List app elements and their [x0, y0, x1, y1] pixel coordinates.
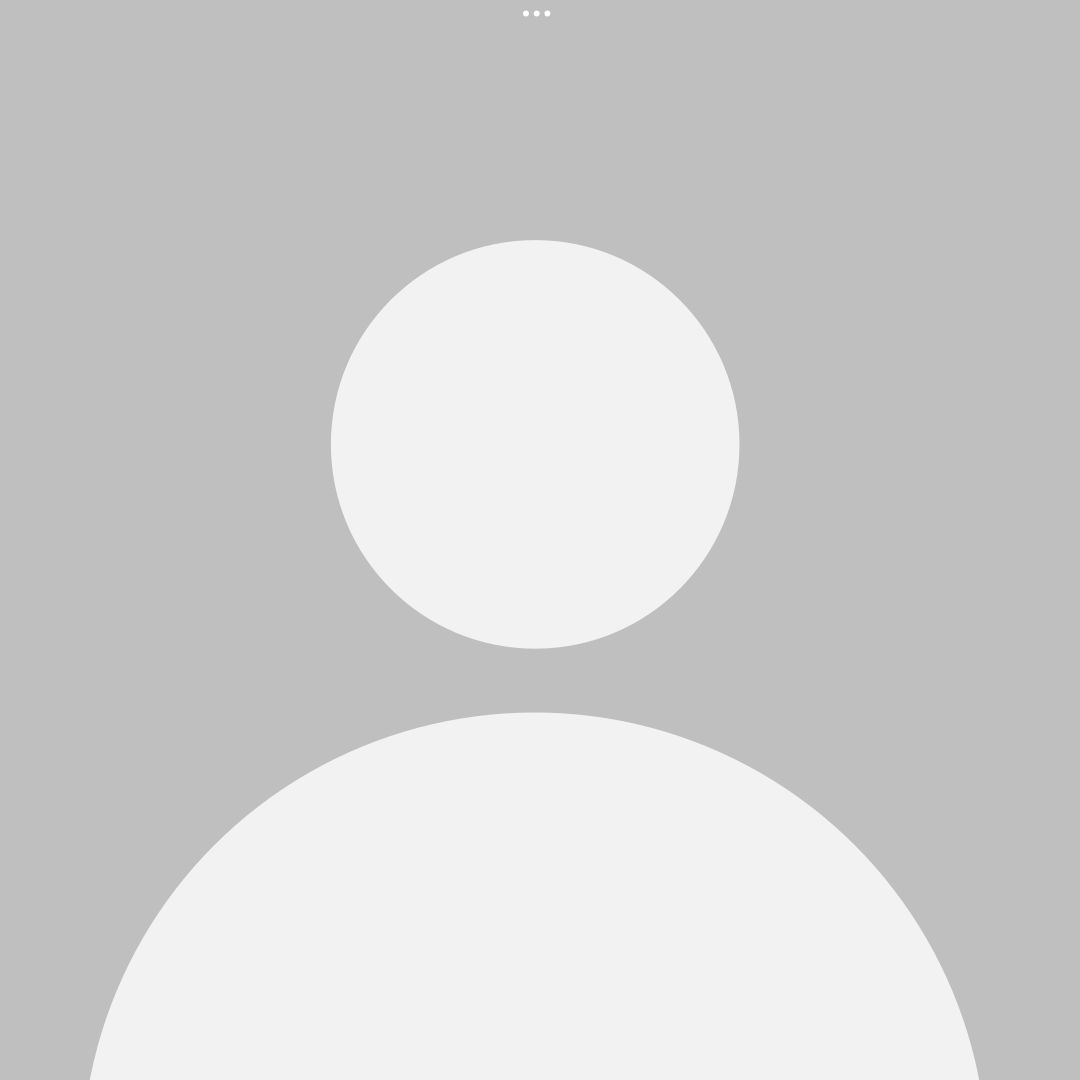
button[interactable]: More options: [511, 0, 563, 27]
